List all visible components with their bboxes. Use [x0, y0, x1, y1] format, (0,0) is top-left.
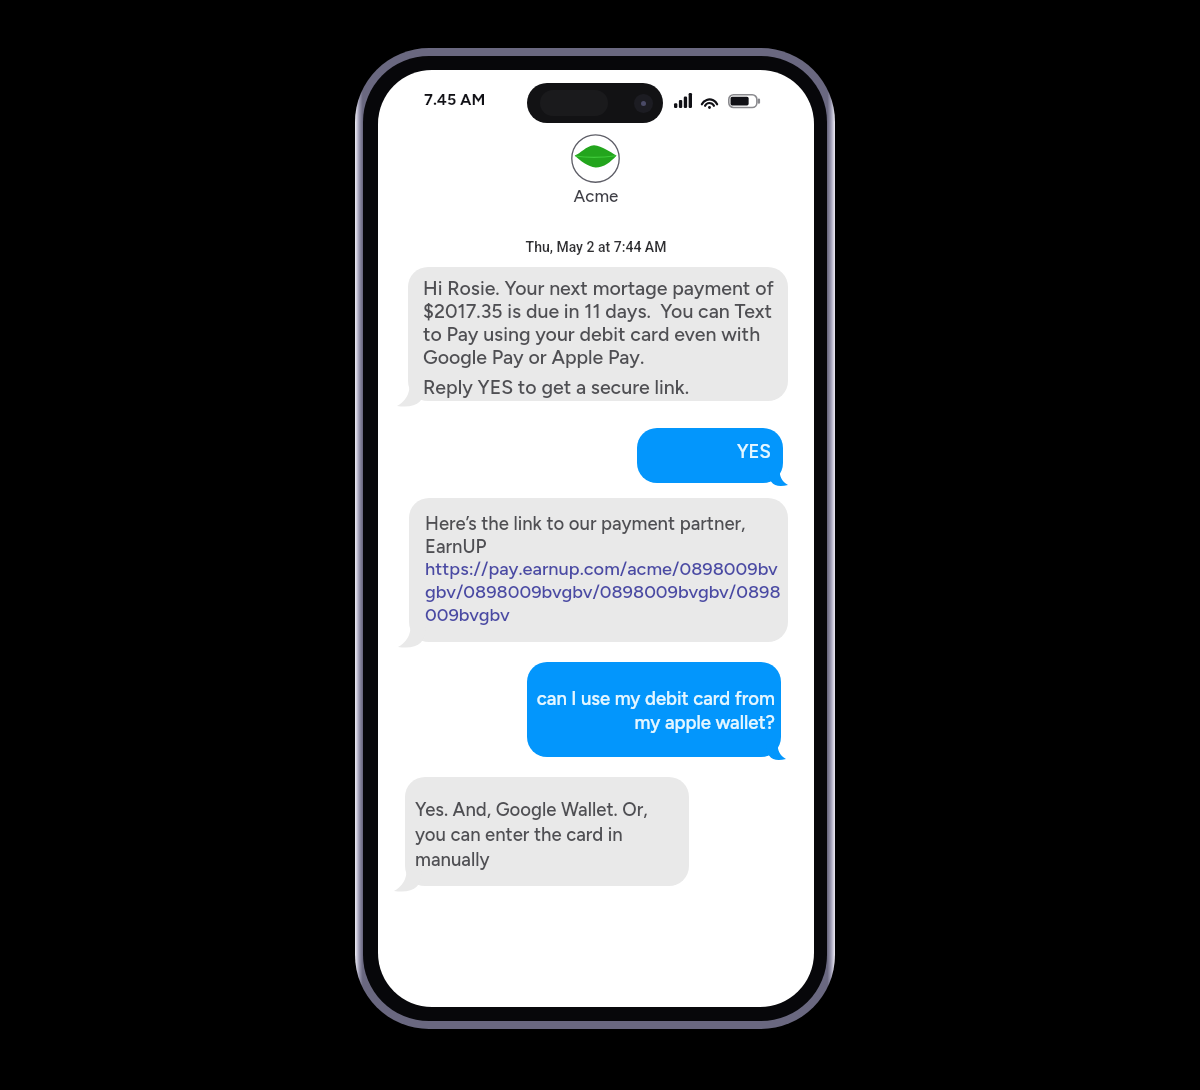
staticText: to Pay using your debit card even with	[423, 322, 761, 345]
staticText: Thu, May 2 at 7:44 AM	[378, 239, 814, 255]
staticText: you can enter the card in	[415, 823, 623, 848]
staticText: Yes. And, Google Wallet. Or,	[415, 798, 648, 823]
staticText: 7.45 AM	[424, 90, 486, 109]
staticText: YES	[737, 440, 771, 463]
button[interactable]	[393, 777, 701, 896]
staticText: gbv/0898009bvgbv/0898009bvgbv/0898	[425, 581, 781, 604]
button[interactable]: Acme profile	[571, 134, 620, 183]
button[interactable]	[625, 428, 795, 493]
staticText: Reply YES to get a secure link.	[423, 375, 689, 398]
staticText: Hi Rosie. Your next mortage payment of	[423, 276, 774, 299]
button[interactable]	[515, 662, 793, 767]
button[interactable]	[396, 267, 800, 411]
button[interactable]	[397, 498, 800, 652]
staticText: EarnUP	[425, 535, 487, 558]
staticText: my apple wallet?	[634, 711, 775, 735]
staticText: Here’s the link to our payment partner,	[425, 512, 746, 535]
staticText: 009bvgbv	[425, 604, 510, 627]
staticText: Google Pay or Apple Pay.	[423, 345, 645, 368]
staticText: https://pay.earnup.com/acme/0898009bv	[425, 558, 778, 581]
staticText: $2017.35 is due in 11 days. You can Text	[423, 299, 773, 322]
staticText: can I use my debit card from	[536, 687, 775, 711]
staticText: manually	[415, 848, 490, 873]
staticText: Acme	[378, 186, 814, 206]
